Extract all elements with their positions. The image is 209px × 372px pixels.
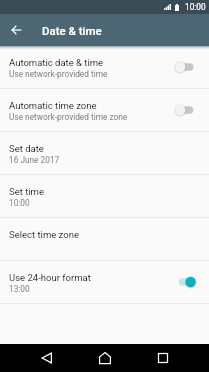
button[interactable]: Off (179, 98, 209, 122)
staticText: Use 24-hour format (9, 272, 91, 283)
button[interactable]: Automatic time zone (0, 89, 209, 131)
staticText: Set date (9, 143, 44, 154)
button[interactable]: On (179, 270, 209, 294)
button[interactable]: Recent apps (149, 344, 177, 372)
staticText: Set time (9, 186, 44, 197)
staticText: Use network-provided time (9, 69, 108, 79)
staticText: Automatic date & time (9, 57, 104, 68)
staticText: Automatic time zone (9, 100, 97, 111)
button[interactable]: Off (179, 55, 209, 79)
staticText: 10:00 (9, 198, 30, 208)
button[interactable]: Back (33, 344, 61, 372)
staticText: 10:00 (185, 2, 206, 12)
staticText: Select time zone (9, 229, 79, 240)
staticText: 13:00 (9, 284, 30, 294)
button[interactable]: Set time (0, 175, 209, 217)
staticText: 16 June 2017 (9, 155, 60, 165)
button[interactable]: Navigate up (0, 14, 32, 46)
staticText: Use network-provided time zone (9, 112, 128, 122)
staticText: Date & time (42, 24, 102, 37)
button[interactable]: Use 24-hour format (0, 261, 209, 303)
button[interactable]: Set date (0, 132, 209, 174)
button[interactable]: Select time zone (0, 218, 209, 260)
button[interactable]: Home (91, 344, 119, 372)
button[interactable]: Automatic date & time (0, 46, 209, 88)
